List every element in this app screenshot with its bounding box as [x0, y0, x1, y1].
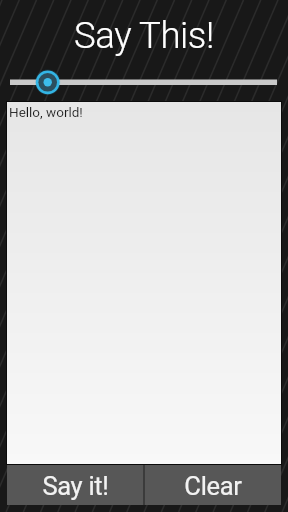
button[interactable]: Say it!: [7, 465, 143, 505]
staticText: Hello, world!: [9, 104, 83, 120]
button[interactable]: Clear: [145, 465, 281, 505]
staticText: Say it!: [42, 471, 109, 501]
staticText: Say This!: [74, 14, 214, 57]
button[interactable]: Speech rate slider: [0, 66, 288, 101]
staticText: Clear: [184, 471, 242, 501]
button[interactable]: Hello, world!: [7, 102, 281, 464]
